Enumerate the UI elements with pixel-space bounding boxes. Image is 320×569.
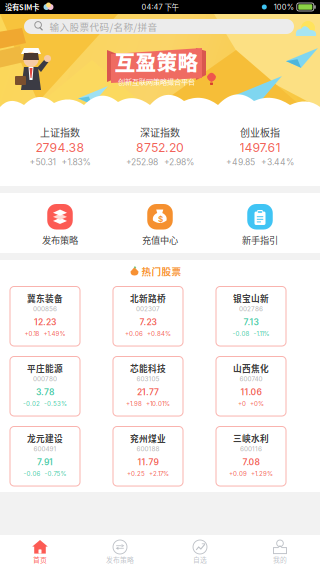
- staticText: 600740: [239, 375, 262, 383]
- button[interactable]: 山西焦化: [216, 356, 286, 416]
- staticText: 自选: [193, 554, 207, 564]
- staticText: 11.79: [137, 457, 158, 467]
- staticText: +10.01%: [146, 400, 170, 407]
- staticText: 600188: [136, 445, 159, 453]
- staticText: 8752.20: [136, 140, 184, 155]
- staticText: 我的: [273, 554, 287, 564]
- staticText: 平庄能源: [27, 362, 63, 374]
- staticText: 11.06: [240, 387, 261, 397]
- staticText: 发布策略: [106, 554, 134, 564]
- staticText: 三峡水利: [233, 432, 269, 444]
- staticText: 7.13: [243, 317, 258, 327]
- staticText: 热门股票: [141, 264, 181, 278]
- staticText: 山西焦化: [233, 362, 269, 374]
- button[interactable]: 搜索: [24, 19, 294, 34]
- staticText: 603105: [136, 375, 159, 383]
- staticText: 发布策略: [42, 233, 78, 246]
- button[interactable]: 平庄能源: [10, 356, 80, 416]
- staticText: 000856: [33, 305, 57, 313]
- staticText: 创新互联网策略撮合平台: [118, 76, 195, 87]
- staticText: +1.83%: [61, 157, 90, 167]
- button[interactable]: 发布策略: [80, 535, 160, 569]
- staticText: 首页: [33, 554, 47, 564]
- button[interactable]: 北新路桥: [113, 286, 183, 346]
- staticText: +1.49%: [43, 330, 65, 337]
- staticText: 600491: [33, 445, 56, 453]
- staticText: +0.09: [229, 470, 247, 477]
- button[interactable]: $: [110, 204, 210, 252]
- staticText: 充值中心: [142, 233, 178, 246]
- staticText: +2.98%: [164, 157, 194, 167]
- staticText: -0.08: [232, 330, 249, 337]
- staticText: 1497.61: [239, 140, 280, 155]
- staticText: +2.17%: [149, 470, 169, 477]
- button[interactable]: 新手指引: [210, 204, 310, 252]
- staticText: -0.06: [23, 470, 40, 477]
- staticText: +0.25: [127, 470, 145, 477]
- staticText: -1.11%: [253, 330, 269, 337]
- staticText: 芯能科技: [130, 362, 166, 374]
- staticText: +252.98: [126, 157, 158, 167]
- staticText: 04:47: [141, 2, 162, 11]
- staticText: 002786: [239, 305, 263, 313]
- staticText: 上证指数: [40, 125, 80, 139]
- staticText: 21.77: [137, 387, 159, 397]
- staticText: 输入股票代码/名称/拼音: [49, 20, 157, 34]
- button[interactable]: 银宝山新: [216, 286, 286, 346]
- staticText: $: [158, 214, 163, 224]
- staticText: +0.06: [125, 330, 143, 337]
- staticText: 000780: [33, 375, 57, 383]
- staticText: +0.84%: [147, 330, 171, 337]
- button[interactable]: 冀东装备: [10, 286, 80, 346]
- staticText: 7.08: [242, 457, 259, 467]
- staticText: 银宝山新: [233, 292, 269, 304]
- staticText: +0%: [250, 400, 264, 407]
- button[interactable]: 自选: [160, 535, 240, 569]
- staticText: 7.91: [37, 457, 53, 467]
- button[interactable]: 发布策略: [10, 204, 110, 252]
- staticText: 没有SIM卡: [5, 2, 39, 12]
- staticText: -0.75%: [44, 470, 66, 477]
- staticText: 7.23: [139, 317, 156, 327]
- staticText: 新手指引: [242, 233, 278, 246]
- button[interactable]: 三峡水利: [216, 426, 286, 486]
- staticText: 600116: [240, 445, 262, 453]
- staticText: 2794.38: [35, 140, 84, 155]
- staticText: -0.53%: [44, 400, 67, 407]
- staticText: 兖州煤业: [130, 432, 166, 444]
- staticText: +3.44%: [261, 157, 294, 167]
- staticText: +0.18: [24, 330, 39, 337]
- button[interactable]: 我的: [240, 535, 320, 569]
- staticText: 下午: [164, 2, 178, 12]
- staticText: +50.31: [29, 157, 55, 167]
- staticText: 北新路桥: [130, 292, 166, 304]
- button[interactable]: 首页: [0, 535, 80, 569]
- staticText: +0: [238, 400, 246, 407]
- button[interactable]: 兖州煤业: [113, 426, 183, 486]
- staticText: -0.02: [23, 400, 40, 407]
- staticText: 深证指数: [140, 125, 180, 139]
- button[interactable]: 龙元建设: [10, 426, 80, 486]
- staticText: +1.98: [126, 400, 142, 407]
- staticText: +49.85: [226, 157, 255, 167]
- staticText: 创业板指: [240, 125, 280, 139]
- staticText: 3.78: [36, 387, 54, 397]
- button[interactable]: 芯能科技: [113, 356, 183, 416]
- staticText: 12.23: [34, 317, 56, 327]
- staticText: 100%: [274, 2, 294, 11]
- staticText: 龙元建设: [27, 432, 63, 444]
- staticText: +1.29%: [251, 470, 273, 477]
- staticText: 冀东装备: [27, 292, 63, 304]
- staticText: 互盈策略: [114, 46, 198, 76]
- staticText: 002307: [136, 305, 160, 313]
